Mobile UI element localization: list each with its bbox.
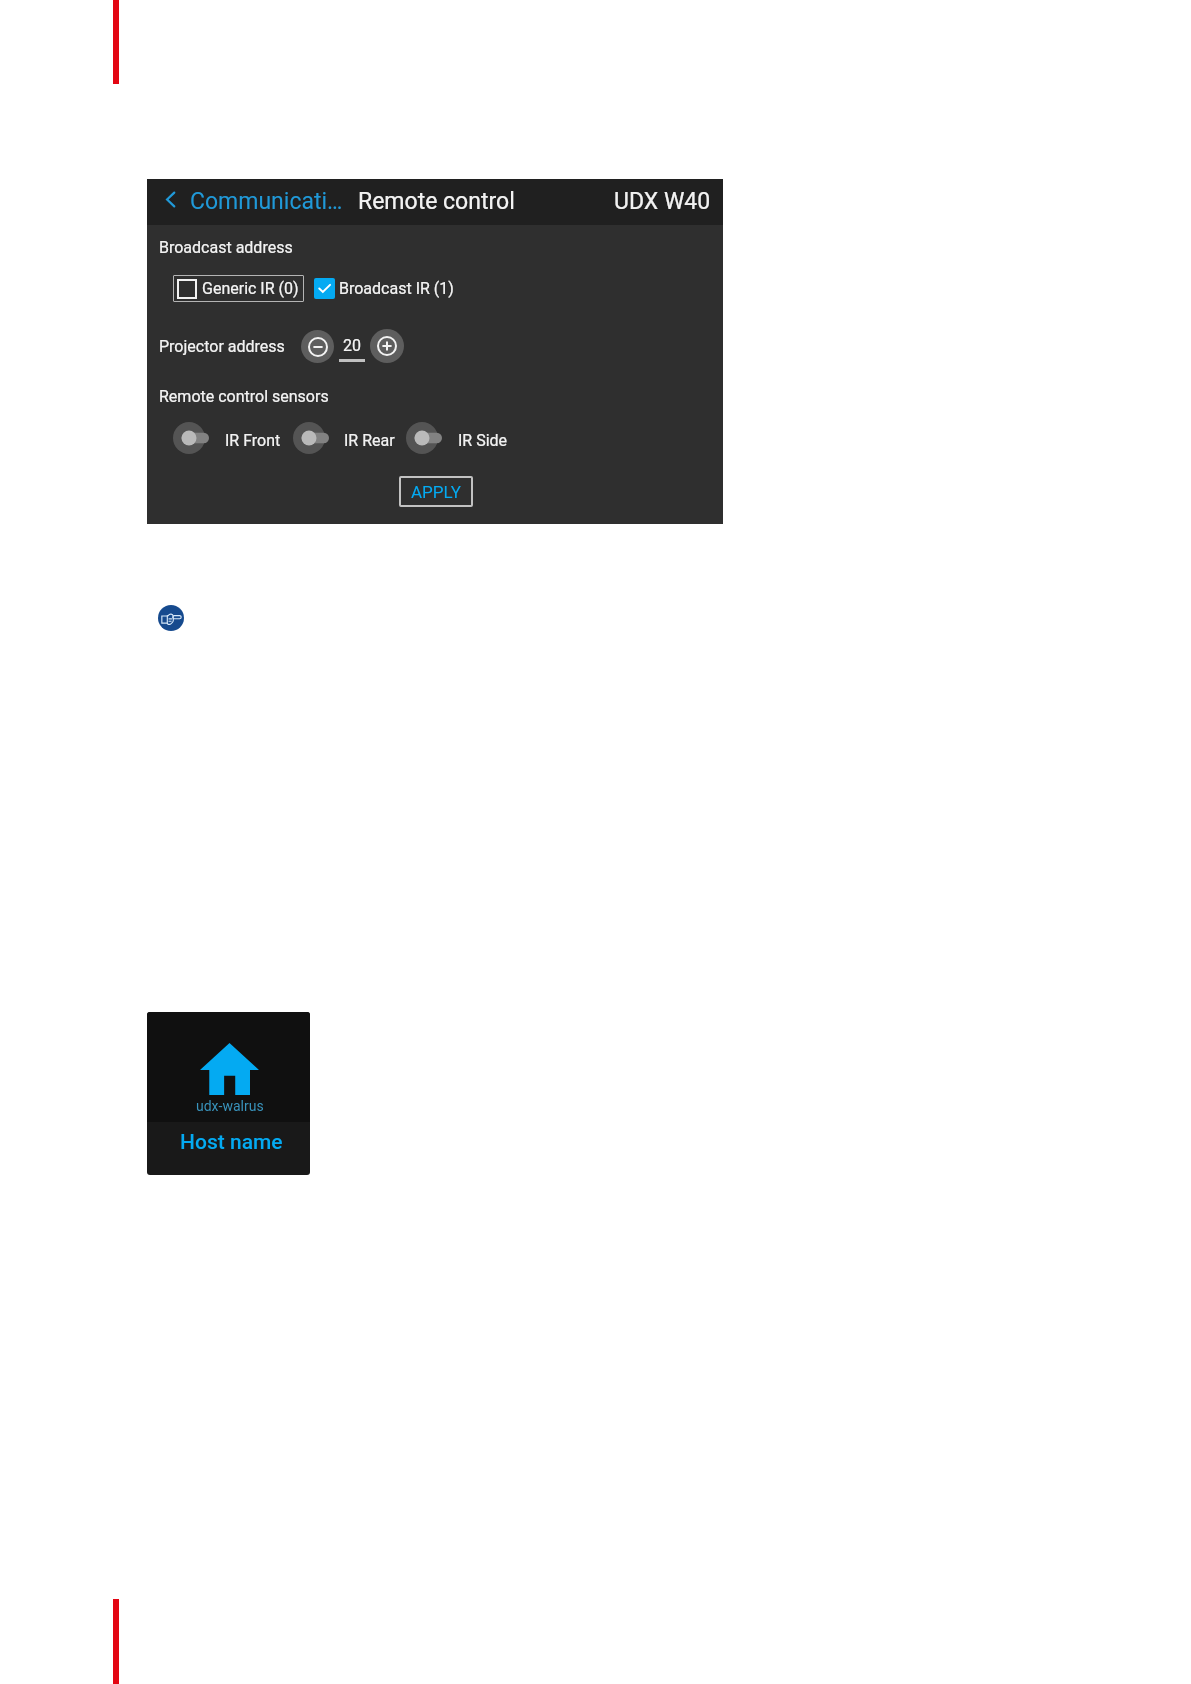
button[interactable]: udx-walrus (147, 1012, 310, 1175)
button[interactable]: Increase projector address (370, 329, 404, 363)
button[interactable]: Decrease projector address (301, 330, 334, 363)
button[interactable]: IR Front (173, 422, 283, 454)
staticText: Broadcast IR (1) (339, 279, 454, 298)
button[interactable]: Generic IR (0) (173, 275, 304, 302)
staticText: 20 (343, 336, 361, 355)
staticText: APPLY (411, 482, 461, 502)
button[interactable]: Note (158, 605, 184, 631)
button[interactable]: APPLY (399, 476, 473, 507)
staticText: udx-walrus (196, 1098, 264, 1114)
staticText: Broadcast address (159, 238, 293, 257)
staticText: IR Rear (344, 431, 395, 450)
staticText: UDX W40 (614, 188, 711, 215)
button[interactable]: Broadcast IR (1) (314, 275, 454, 302)
staticText: Projector address (159, 337, 285, 356)
button[interactable]: Communicati… (161, 179, 359, 225)
button[interactable]: IR Rear (293, 422, 402, 454)
staticText: Remote control (358, 188, 515, 215)
button[interactable]: IR Side (406, 422, 516, 454)
staticText: Host name (180, 1130, 283, 1155)
staticText: IR Side (458, 431, 508, 450)
staticText: IR Front (225, 431, 281, 450)
staticText: Remote control sensors (159, 387, 329, 406)
staticText: Generic IR (0) (202, 279, 299, 298)
staticText: Communicati… (190, 188, 343, 215)
